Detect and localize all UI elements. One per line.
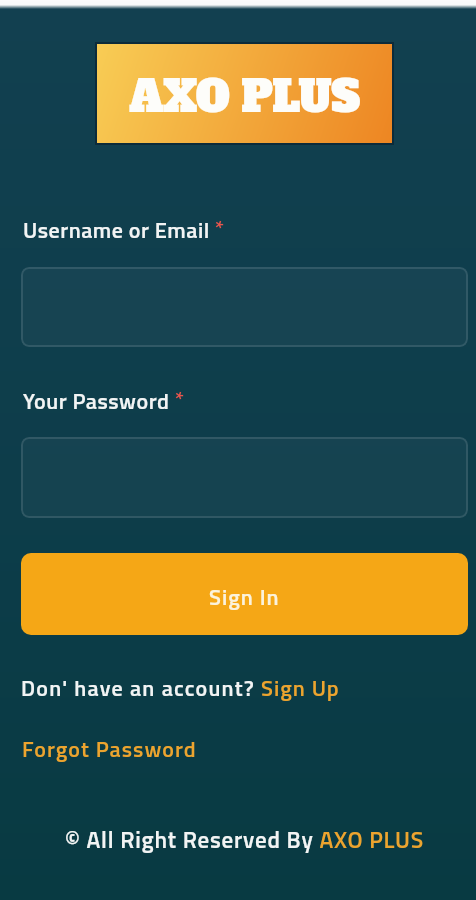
button[interactable]: Forgot Password — [22, 732, 197, 765]
button[interactable] — [21, 437, 468, 518]
staticText: Username or Email — [23, 213, 210, 246]
staticText: Sign In — [209, 580, 280, 613]
staticText: Don' have an account? — [21, 671, 261, 704]
staticText: AXO PLUS — [129, 67, 360, 126]
staticText: © All Right Reserved By AXO PLUS — [65, 822, 425, 857]
button[interactable]: Sign In — [21, 553, 468, 635]
staticText: * — [170, 382, 185, 415]
button[interactable] — [21, 267, 468, 347]
staticText: Your Password — [23, 384, 170, 417]
staticText: * — [210, 211, 225, 244]
button[interactable]: Sign Up — [261, 671, 340, 704]
